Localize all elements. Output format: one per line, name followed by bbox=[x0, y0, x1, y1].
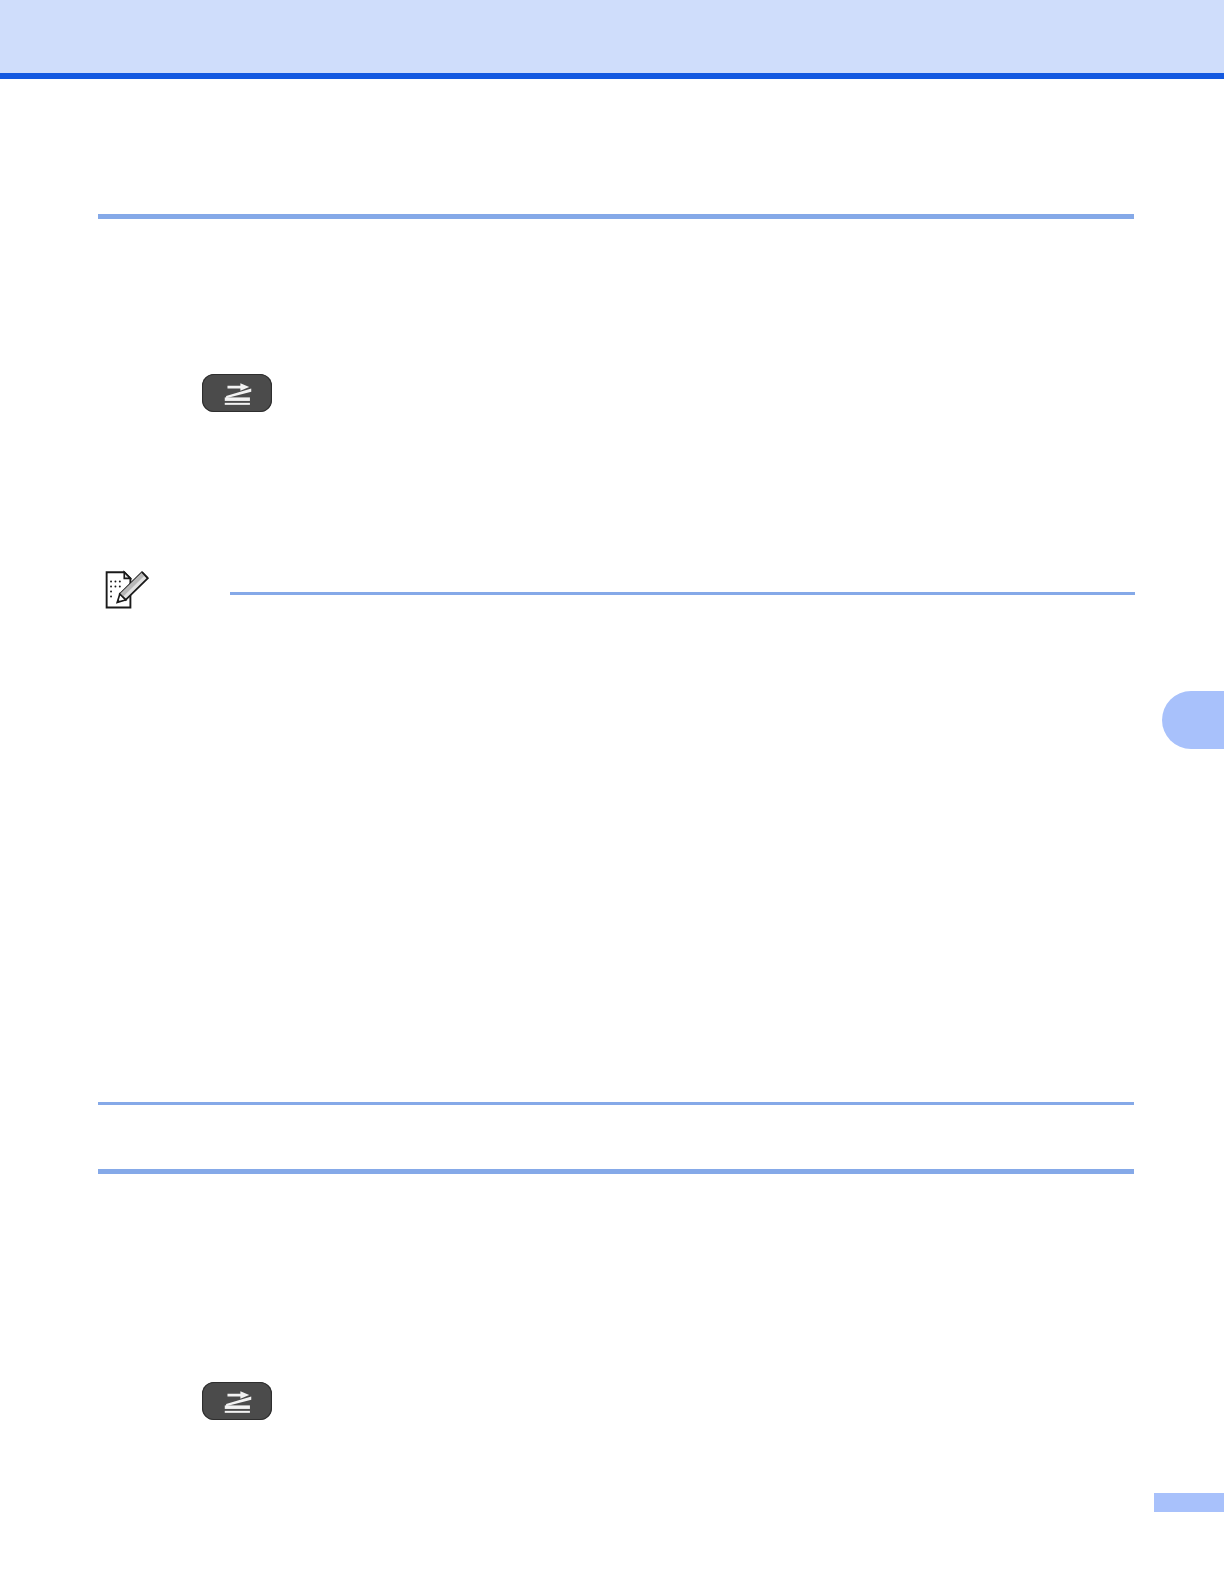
button[interactable]: Scan key bbox=[202, 374, 272, 412]
button[interactable]: Chapter tab bbox=[1162, 691, 1224, 749]
button[interactable]: Scan key bbox=[202, 1382, 272, 1420]
